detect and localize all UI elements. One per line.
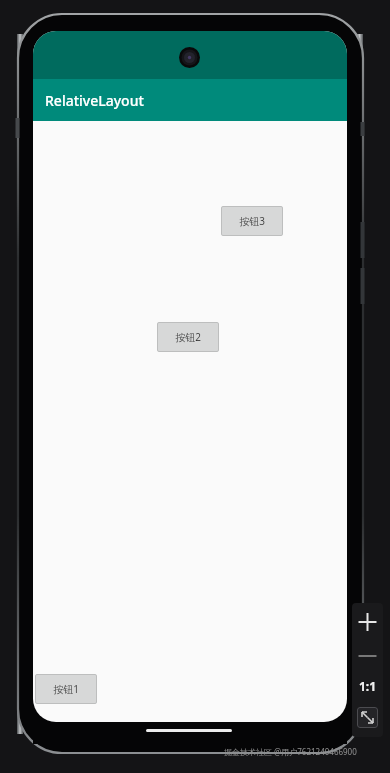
staticText: 按钮3: [239, 214, 265, 228]
button[interactable]: Zoom in: [352, 603, 383, 641]
button[interactable]: 按钮1: [35, 674, 97, 704]
button[interactable]: Zoom out: [352, 641, 383, 671]
staticText: RelativeLayout: [45, 91, 144, 110]
button[interactable]: 1:1: [352, 671, 383, 701]
button[interactable]: 按钮2: [157, 322, 219, 352]
button[interactable]: 按钮3: [221, 206, 283, 236]
staticText: 按钮2: [175, 330, 201, 344]
staticText: 掘金技术社区 @用户7621240466900: [224, 746, 357, 757]
staticText: 1:1: [359, 678, 377, 694]
staticText: 按钮1: [53, 682, 79, 696]
button[interactable]: Fit to screen: [357, 707, 378, 728]
